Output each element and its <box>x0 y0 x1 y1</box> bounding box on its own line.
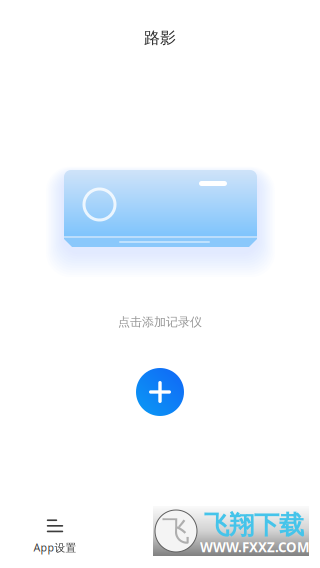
staticText: 飞翔下载 <box>204 509 304 540</box>
button[interactable]: App设置 <box>17 515 93 559</box>
staticText: App设置 <box>33 540 76 555</box>
button[interactable]: 添加记录仪 <box>136 368 184 416</box>
staticText: WWW.FXXZ.COM <box>200 538 310 556</box>
staticText: 飞 <box>162 514 190 548</box>
staticText: 路影 <box>144 28 176 48</box>
staticText: 点击添加记录仪 <box>118 315 202 329</box>
